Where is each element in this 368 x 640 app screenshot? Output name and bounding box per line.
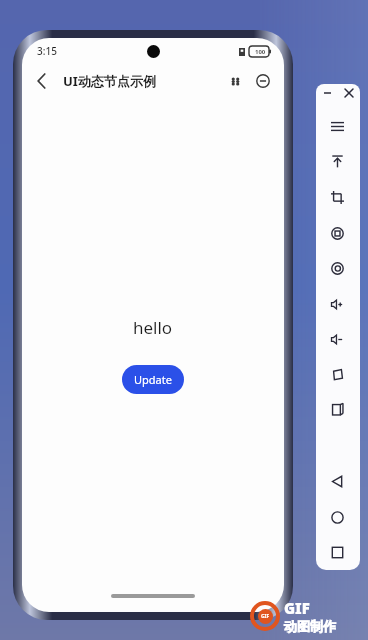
button[interactable]: Volume up bbox=[324, 291, 350, 317]
button[interactable]: Close panel bbox=[338, 89, 360, 97]
button[interactable]: More options bbox=[223, 69, 247, 93]
staticText: 动图制作 bbox=[284, 618, 336, 634]
staticText: Update bbox=[134, 372, 172, 387]
button[interactable]: Menu bbox=[324, 113, 350, 139]
staticText: GIF bbox=[261, 613, 270, 620]
button[interactable]: Screenshot bbox=[324, 220, 350, 246]
button[interactable]: Minimize bbox=[250, 68, 276, 94]
staticText: UI动态节点示例 bbox=[63, 72, 156, 90]
button[interactable]: Screen bbox=[324, 396, 350, 422]
button[interactable]: Volume down bbox=[324, 326, 350, 352]
staticText: hello bbox=[133, 316, 173, 339]
button[interactable]: Update bbox=[122, 365, 184, 394]
button[interactable]: Record bbox=[324, 255, 350, 281]
staticText: 3:15 bbox=[37, 44, 57, 58]
button[interactable]: Upload bbox=[324, 148, 350, 174]
staticText: 100 bbox=[255, 48, 266, 56]
button[interactable]: Home bbox=[324, 504, 350, 530]
staticText: GIF bbox=[284, 598, 310, 618]
button[interactable]: Back bbox=[324, 468, 350, 494]
button[interactable]: Crop bbox=[324, 184, 350, 210]
button[interactable]: Minimize panel bbox=[316, 92, 338, 94]
button[interactable]: Back bbox=[28, 67, 56, 95]
button[interactable]: Recents bbox=[324, 539, 350, 565]
button[interactable]: Rotate bbox=[324, 361, 350, 387]
